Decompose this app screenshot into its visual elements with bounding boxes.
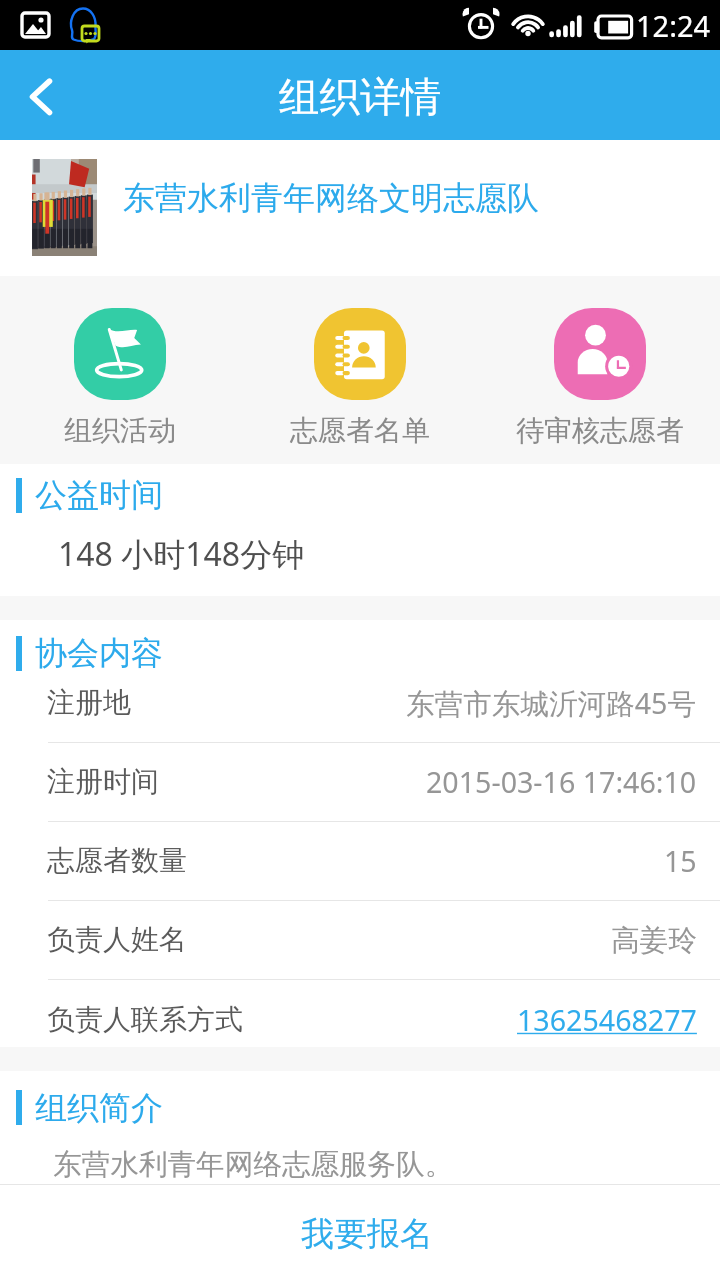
button[interactable]: 待审核志愿者 (480, 276, 720, 464)
staticText: 组织活动 (64, 413, 176, 448)
staticText: 148 小时148分钟 (58, 532, 305, 576)
button[interactable]: 负责人联系方式 (0, 979, 720, 1047)
staticText: 待审核志愿者 (516, 413, 684, 448)
staticText: 12:24 (636, 6, 711, 45)
staticText: 东营水利青年网络文明志愿队 (123, 178, 539, 218)
button[interactable]: 志愿者名单 (240, 276, 480, 464)
button[interactable]: 东营水利青年网络文明志愿队 (0, 140, 720, 276)
staticText: 志愿者数量 (47, 843, 187, 878)
staticText: 东营水利青年网络志愿服务队。 (53, 1146, 454, 1182)
button[interactable]: 我要报名 (0, 1185, 720, 1280)
staticText: 2015-03-16 17:46:10 (426, 762, 697, 801)
staticText: 东营市东城沂河路45号 (406, 683, 697, 722)
staticText: 协会内容 (35, 633, 163, 673)
staticText: 我要报名 (301, 1213, 433, 1255)
button[interactable]: Back (0, 50, 90, 140)
staticText: 志愿者名单 (290, 413, 430, 448)
button[interactable]: 负责人姓名 (0, 900, 720, 979)
staticText: 15 (664, 841, 697, 880)
staticText: 负责人联系方式 (47, 1002, 243, 1037)
button[interactable]: 组织活动 (0, 276, 240, 464)
button[interactable]: 注册时间 (0, 742, 720, 821)
button[interactable]: 志愿者数量 (0, 821, 720, 900)
button[interactable]: 注册地 (0, 663, 720, 742)
staticText: 高姜玲 (611, 922, 697, 958)
staticText: 注册时间 (47, 764, 159, 799)
staticText: 注册地 (47, 685, 131, 720)
staticText: 负责人姓名 (47, 922, 187, 957)
staticText: 组织详情 (279, 72, 442, 123)
staticText: 公益时间 (35, 475, 163, 515)
staticText: 13625468277 (517, 1000, 697, 1039)
staticText: 组织简介 (35, 1088, 163, 1128)
